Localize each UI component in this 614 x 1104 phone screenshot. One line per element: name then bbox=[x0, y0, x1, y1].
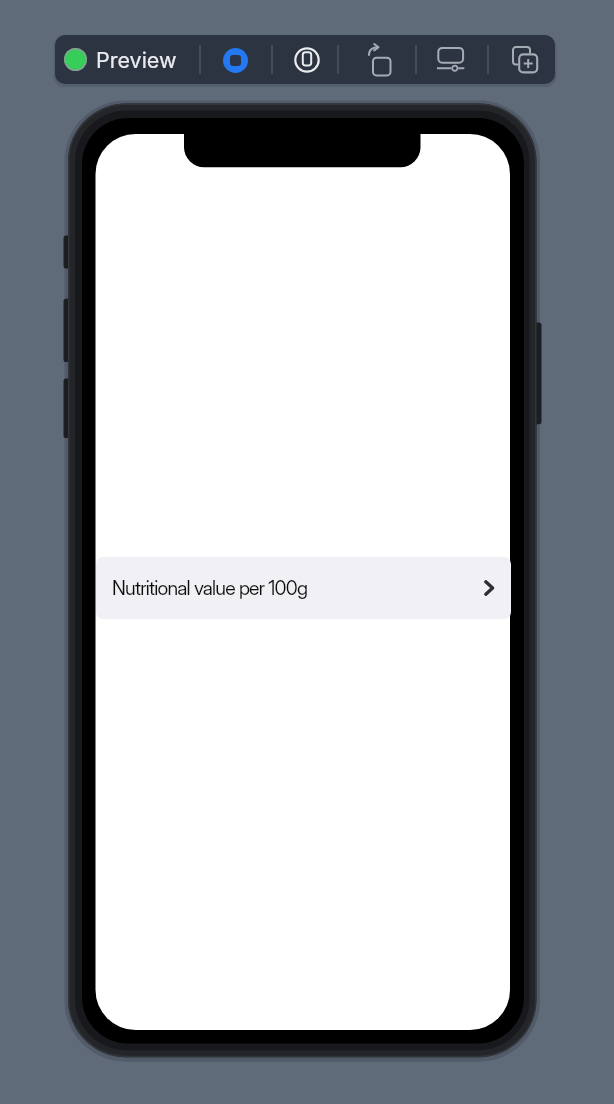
button[interactable] bbox=[217, 42, 253, 78]
button[interactable] bbox=[358, 41, 396, 79]
button[interactable] bbox=[289, 42, 325, 78]
button[interactable]: Preview bbox=[64, 35, 177, 84]
button[interactable] bbox=[504, 41, 542, 79]
button[interactable]: Nutritional value per 100g bbox=[96, 557, 511, 619]
staticText: Nutritional value per 100g bbox=[112, 576, 308, 600]
staticText: Preview bbox=[96, 47, 177, 73]
button[interactable] bbox=[432, 41, 470, 79]
